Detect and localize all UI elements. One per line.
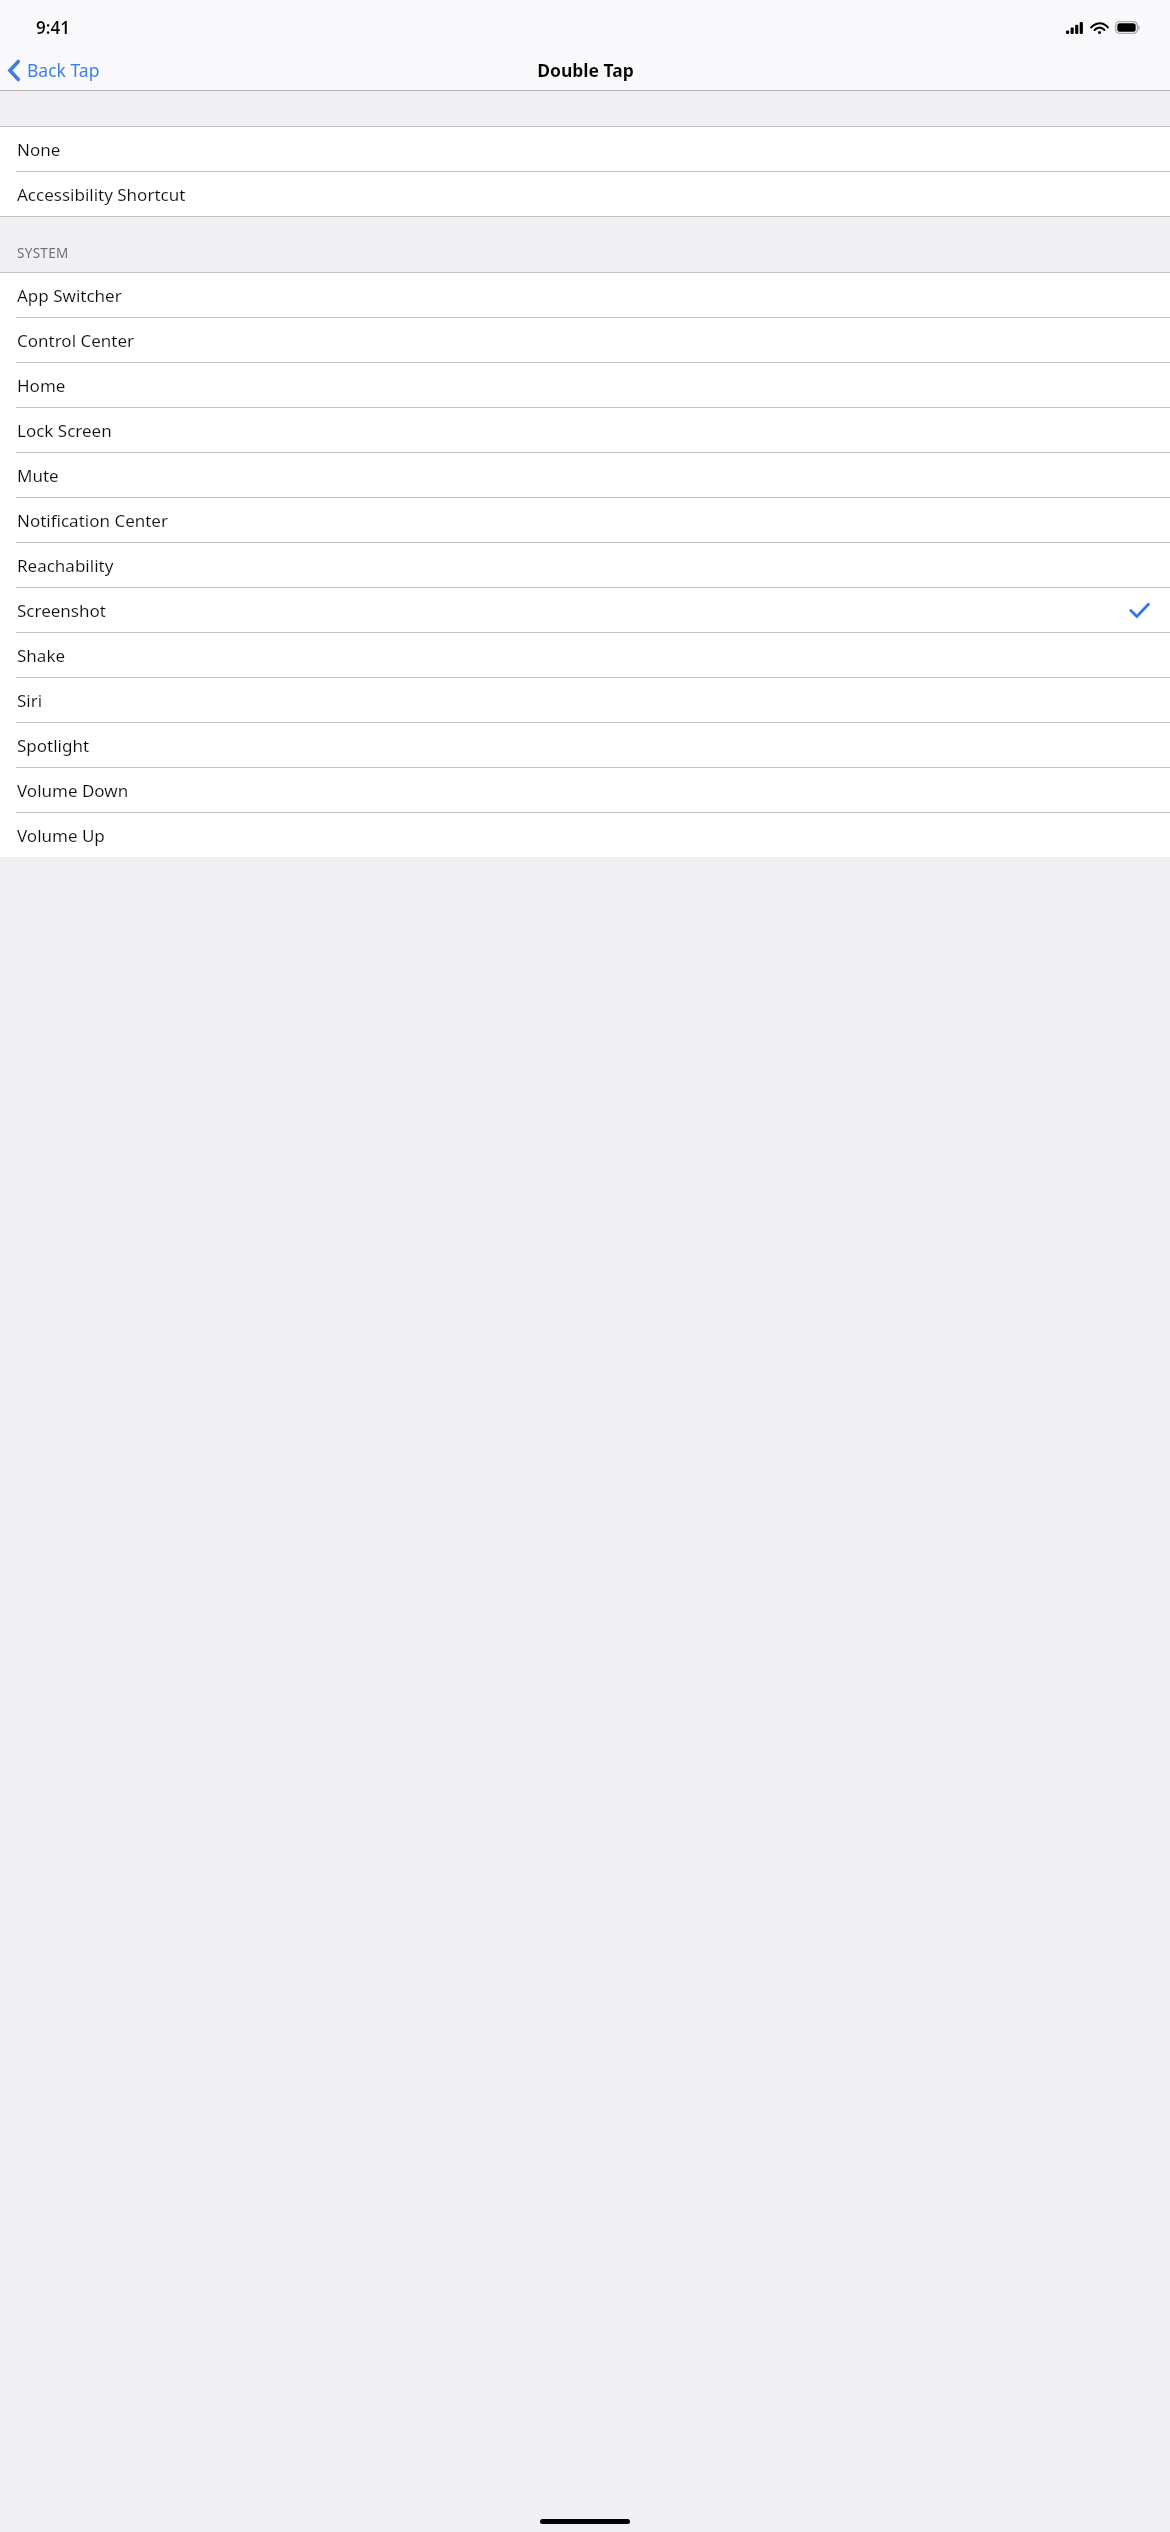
button[interactable]: Home: [0, 363, 1170, 407]
staticText: Shake: [17, 644, 66, 667]
button[interactable]: Screenshot: [0, 588, 1170, 632]
staticText: Siri: [17, 689, 43, 712]
button[interactable]: Notification Center: [0, 498, 1170, 542]
button[interactable]: Lock Screen: [0, 408, 1170, 452]
staticText: Screenshot: [17, 599, 106, 622]
staticText: Volume Up: [17, 824, 105, 847]
staticText: App Switcher: [17, 284, 122, 307]
button[interactable]: None: [0, 127, 1170, 171]
staticText: Home: [17, 374, 66, 397]
staticText: Double Tap: [537, 58, 634, 82]
button[interactable]: App Switcher: [0, 273, 1170, 317]
button[interactable]: Siri: [0, 678, 1170, 722]
staticText: Volume Down: [17, 779, 129, 802]
staticText: 9:41: [36, 16, 70, 39]
staticText: Control Center: [17, 329, 135, 352]
other: Selected: [1130, 603, 1149, 618]
staticText: Reachability: [17, 554, 114, 577]
button[interactable]: Shake: [0, 633, 1170, 677]
staticText: Spotlight: [17, 734, 90, 757]
button[interactable]: Back Tap: [0, 53, 114, 87]
staticText: Mute: [17, 464, 59, 487]
staticText: Back Tap: [27, 58, 100, 82]
button[interactable]: Accessibility Shortcut: [0, 172, 1170, 216]
button[interactable]: Spotlight: [0, 723, 1170, 767]
button[interactable]: Reachability: [0, 543, 1170, 587]
staticText: None: [17, 138, 61, 161]
staticText: Lock Screen: [17, 419, 112, 442]
button[interactable]: Control Center: [0, 318, 1170, 362]
button[interactable]: Volume Down: [0, 768, 1170, 812]
staticText: Accessibility Shortcut: [17, 183, 186, 206]
button[interactable]: Mute: [0, 453, 1170, 497]
staticText: SYSTEM: [17, 244, 69, 262]
button[interactable]: Volume Up: [0, 813, 1170, 857]
staticText: Notification Center: [17, 509, 168, 532]
